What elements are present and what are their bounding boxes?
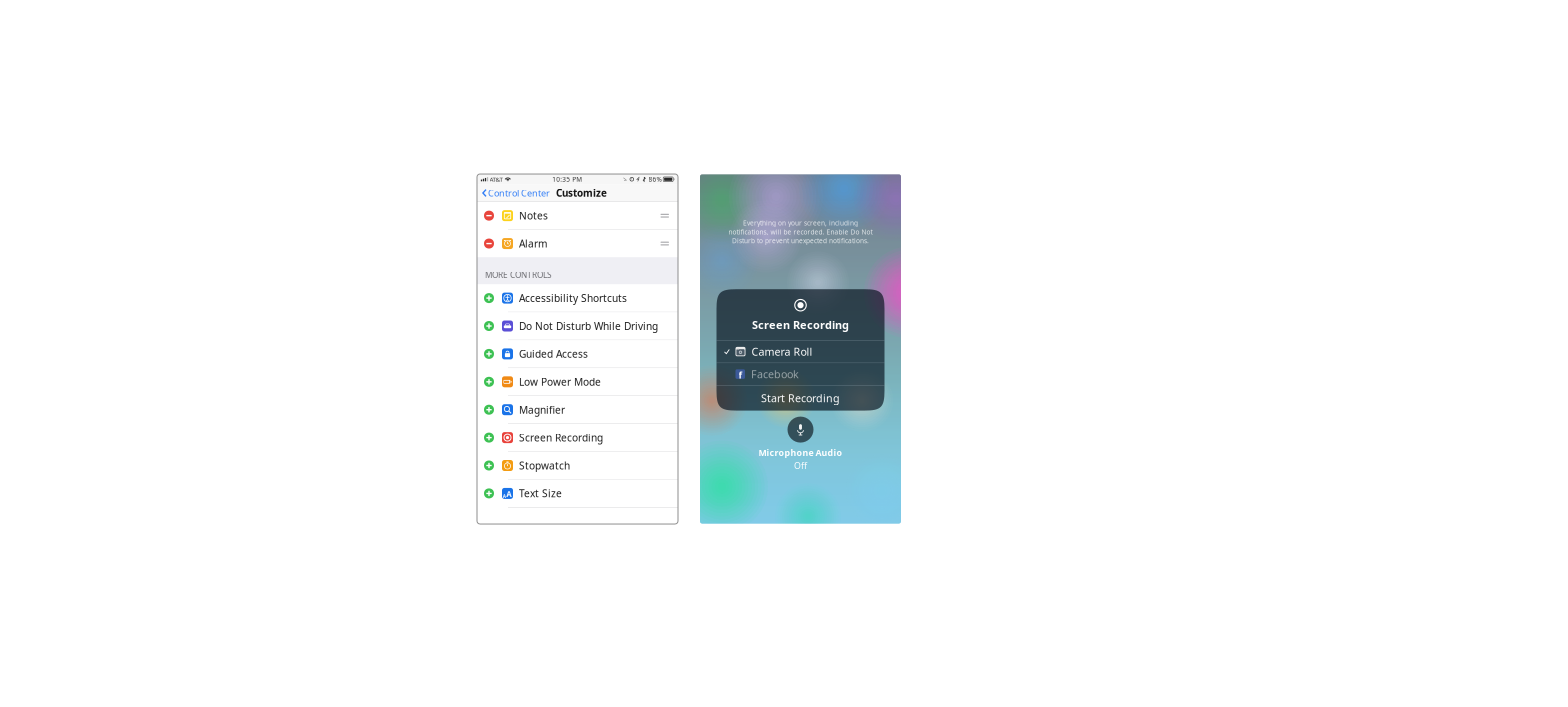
staticText: A [506, 489, 512, 500]
staticText: 86% [649, 175, 662, 184]
staticText: Guided Access [519, 347, 588, 361]
button[interactable]: Magnifier [477, 396, 678, 423]
staticText: Start Recording [761, 391, 840, 405]
staticText: Accessibility Shortcuts [519, 291, 627, 305]
staticText: 10:35 PM [552, 175, 582, 184]
staticText: Stopwatch [519, 459, 570, 472]
staticText: Notes [519, 209, 548, 222]
button[interactable]: f [716, 363, 884, 385]
staticText: Facebook [751, 367, 799, 381]
button[interactable]: Notes [477, 202, 678, 229]
staticText: MORE CONTROLS [485, 269, 552, 280]
staticText: Text Size [519, 486, 562, 500]
button[interactable]: Microphone Audio [787, 417, 813, 443]
button[interactable]: Accessibility Shortcuts [477, 284, 678, 312]
staticText: Everything on your screen, including [743, 218, 858, 227]
button[interactable]: Alarm [477, 230, 678, 257]
staticText: Do Not Disturb While Driving [519, 319, 658, 333]
staticText: Screen Recording [752, 317, 849, 332]
staticText: Disturb to prevent unexpected notificati… [732, 236, 869, 245]
staticText: Magnifier [519, 403, 565, 417]
button[interactable]: Start Recording [716, 386, 884, 411]
button[interactable]: Screen Recording [477, 424, 678, 451]
staticText: Camera Roll [751, 344, 812, 359]
staticText: Off [794, 460, 807, 472]
staticText: Low Power Mode [519, 375, 601, 389]
staticText: Alarm [519, 237, 547, 250]
button[interactable]: Guided Access [477, 340, 678, 368]
staticText: Customize [556, 186, 607, 200]
button[interactable]: Stopwatch [477, 452, 678, 479]
staticText: f [738, 368, 742, 381]
staticText: Screen Recording [519, 431, 603, 444]
staticText: AT&T [490, 175, 503, 183]
staticText: A [503, 493, 506, 500]
button[interactable]: Camera Roll [716, 341, 884, 363]
staticText: Control Center [488, 187, 550, 199]
staticText: notifications, will be recorded. Enable … [728, 227, 872, 236]
button[interactable]: A [477, 480, 678, 507]
staticText: Microphone Audio [758, 447, 842, 459]
button[interactable]: Do Not Disturb While Driving [477, 312, 678, 340]
button[interactable]: Control Center [477, 184, 553, 201]
button[interactable]: Low Power Mode [477, 368, 678, 395]
